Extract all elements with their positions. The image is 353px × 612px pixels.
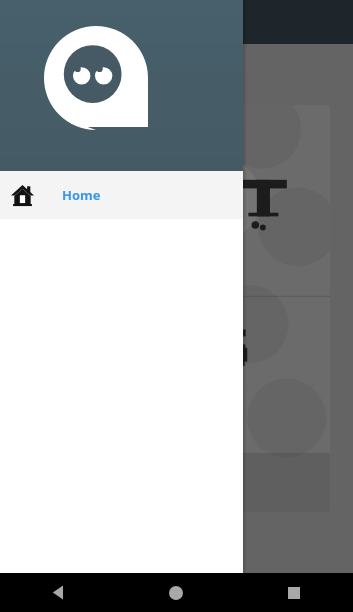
button[interactable]: Home: [117, 573, 235, 612]
staticText: Home: [62, 186, 101, 204]
button[interactable]: [150, 105, 330, 512]
button[interactable]: Recent apps: [235, 573, 353, 612]
button[interactable]: Home: [0, 171, 243, 219]
button[interactable]: Back: [0, 573, 117, 612]
